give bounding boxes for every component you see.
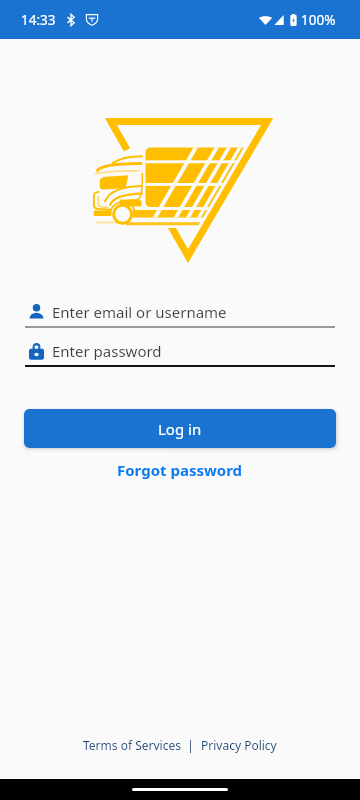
button[interactable]: Forgot password — [107, 456, 253, 484]
button[interactable]: Password field — [25, 341, 335, 367]
staticText: Log in — [158, 419, 202, 439]
button[interactable]: Email or username field — [25, 302, 335, 328]
button[interactable]: Log in — [24, 409, 336, 448]
staticText: Forgot password — [117, 460, 243, 480]
button[interactable]: Privacy Policy — [201, 737, 277, 753]
staticText: 14:33 — [21, 11, 56, 29]
button[interactable]: Terms of Services — [83, 737, 181, 753]
staticText: Enter password — [52, 341, 162, 360]
staticText: | — [181, 737, 201, 753]
staticText: Terms of Services — [83, 737, 181, 753]
staticText: 100% — [301, 11, 336, 29]
staticText: Enter email or username — [52, 302, 227, 321]
staticText: Privacy Policy — [201, 737, 277, 753]
